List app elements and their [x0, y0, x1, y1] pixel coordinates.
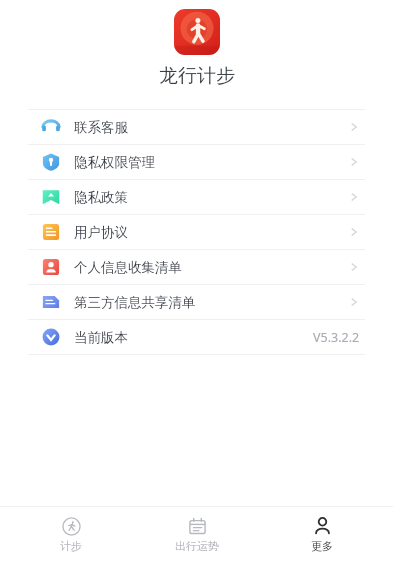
button[interactable]: 用户协议	[28, 215, 365, 249]
staticText: 龙行计步	[159, 64, 235, 88]
button[interactable]: 个人信息收集清单	[28, 250, 365, 284]
button[interactable]: 隐私权限管理	[28, 145, 365, 179]
staticText: 联系客服	[74, 119, 128, 136]
button[interactable]: 计步	[16, 512, 126, 558]
button[interactable]: 当前版本	[28, 320, 365, 354]
staticText: 隐私政策	[74, 189, 128, 206]
staticText: 第三方信息共享清单	[74, 294, 196, 311]
staticText: 出行运势	[175, 539, 219, 553]
staticText: 用户协议	[74, 224, 128, 241]
button[interactable]: 隐私政策	[28, 180, 365, 214]
staticText: 更多	[311, 539, 333, 553]
staticText: 个人信息收集清单	[74, 259, 182, 276]
button[interactable]: 联系客服	[28, 110, 365, 144]
staticText: 计步	[60, 539, 82, 553]
button[interactable]: 出行运势	[142, 512, 252, 558]
staticText: 当前版本	[74, 329, 128, 346]
button[interactable]: 更多	[267, 512, 377, 558]
staticText: V5.3.2.2	[313, 329, 360, 346]
staticText: 隐私权限管理	[74, 154, 155, 171]
button[interactable]: 第三方信息共享清单	[28, 285, 365, 319]
